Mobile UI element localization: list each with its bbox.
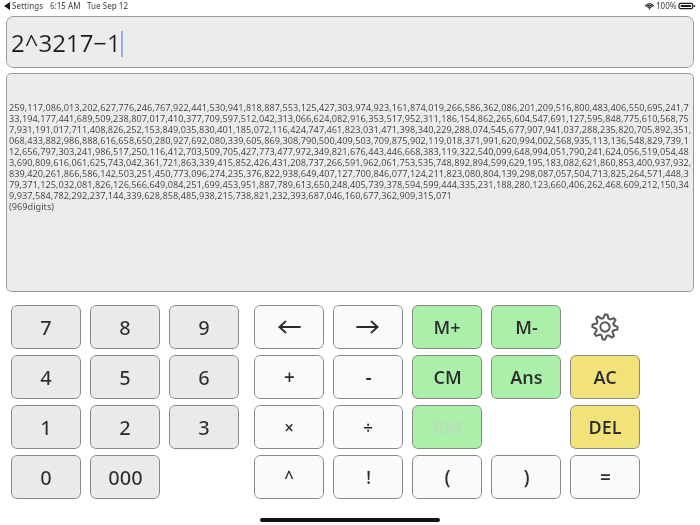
button[interactable]: ( (412, 455, 482, 499)
button[interactable]: RM (412, 405, 482, 449)
staticText: 259,117,086,013,202,627,776,246,767,922,… (9, 101, 692, 212)
staticText: 9 (198, 314, 210, 341)
staticText: CM (433, 365, 462, 390)
button[interactable]: 9 (169, 305, 239, 349)
staticText: - (365, 364, 372, 390)
staticText: 000 (108, 464, 143, 491)
staticText: DEL (588, 415, 622, 440)
staticText: 4 (40, 364, 52, 391)
staticText: M+ (433, 315, 461, 340)
button[interactable]: Settings (570, 305, 640, 349)
button[interactable]: Ans (491, 355, 561, 399)
staticText: ÷ (363, 416, 373, 439)
button[interactable]: 259,117,086,013,202,627,776,246,767,922,… (6, 73, 694, 292)
staticText: 7 (40, 314, 52, 341)
button[interactable]: 1 (11, 405, 81, 449)
button[interactable]: 4 (11, 355, 81, 399)
button[interactable]: 3 (169, 405, 239, 449)
button[interactable]: M- (491, 305, 561, 349)
button[interactable]: 5 (90, 355, 160, 399)
staticText: 2 (119, 414, 131, 441)
button[interactable]: M+ (412, 305, 482, 349)
staticText: 0 (40, 464, 52, 491)
staticText: ( (444, 464, 451, 490)
button[interactable]: 6 (169, 355, 239, 399)
staticText: ! (366, 466, 371, 489)
staticText: × (284, 416, 294, 439)
button[interactable]: 0 (11, 455, 81, 499)
button[interactable]: ^ (254, 455, 324, 499)
button[interactable]: ) (491, 455, 561, 499)
staticText: ^ (284, 466, 294, 489)
button[interactable]: 7 (11, 305, 81, 349)
staticText: 6:15 AM (50, 0, 81, 11)
button[interactable]: 2 (90, 405, 160, 449)
staticText: RM (433, 415, 462, 440)
button[interactable]: Move cursor left (254, 305, 324, 349)
button[interactable]: 8 (90, 305, 160, 349)
staticText: 6 (198, 364, 210, 391)
button[interactable]: - (333, 355, 403, 399)
button[interactable]: 000 (90, 455, 160, 499)
staticText: 5 (119, 364, 131, 391)
staticText: = (600, 464, 611, 490)
staticText: AC (593, 365, 617, 390)
staticText: Tue Sep 12 (87, 0, 128, 11)
button[interactable]: 2^3217−1 (6, 16, 694, 68)
button[interactable]: + (254, 355, 324, 399)
button[interactable]: Move cursor right (333, 305, 403, 349)
staticText: 8 (119, 314, 131, 341)
button[interactable]: ÷ (333, 405, 403, 449)
staticText: + (284, 364, 295, 390)
staticText: ) (523, 464, 530, 490)
button[interactable]: ! (333, 455, 403, 499)
staticText: Settings (12, 0, 44, 11)
staticText: 3 (198, 414, 210, 441)
staticText: Ans (510, 365, 543, 390)
button[interactable]: × (254, 405, 324, 449)
button[interactable]: AC (570, 355, 640, 399)
button[interactable]: CM (412, 355, 482, 399)
staticText: 1 (40, 414, 52, 441)
button[interactable]: DEL (570, 405, 640, 449)
staticText: M- (515, 315, 538, 340)
button[interactable]: = (570, 455, 640, 499)
staticText: 100% (656, 0, 677, 11)
staticText: 2^3217−1 (11, 26, 121, 59)
